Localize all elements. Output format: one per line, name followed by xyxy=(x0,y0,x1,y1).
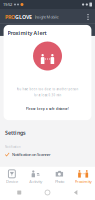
button[interactable]: Proximity xyxy=(71,166,95,185)
staticText: Insight Mobile xyxy=(34,14,58,20)
staticText: Device xyxy=(6,179,18,184)
staticText: Notification xyxy=(5,145,21,149)
staticText: Proximity xyxy=(75,179,92,184)
staticText: Photo xyxy=(55,179,64,184)
button[interactable]: More options xyxy=(83,10,93,23)
button[interactable]: Back xyxy=(67,185,85,200)
staticText: Notification on Scanner xyxy=(12,152,51,157)
button[interactable]: Photo xyxy=(47,166,71,185)
staticText: Activity xyxy=(29,179,42,184)
staticText: You have been too close to another perso… xyxy=(16,87,78,91)
button[interactable]: Device xyxy=(0,166,24,185)
staticText: 19:52 xyxy=(3,2,12,7)
staticText: for at least 0.30 min xyxy=(33,94,61,97)
staticText: Proximity Alert xyxy=(8,29,47,36)
staticText: Settings xyxy=(5,129,26,136)
staticText: Please keep a safe distance! xyxy=(26,107,69,111)
button[interactable]: Recent apps xyxy=(10,185,28,200)
button[interactable]: Home xyxy=(38,185,56,200)
staticText: GLOVE xyxy=(15,13,32,21)
button[interactable]: Activity xyxy=(24,166,48,185)
button[interactable]: Notification on Scanner xyxy=(0,149,95,159)
staticText: PRO xyxy=(5,13,15,21)
